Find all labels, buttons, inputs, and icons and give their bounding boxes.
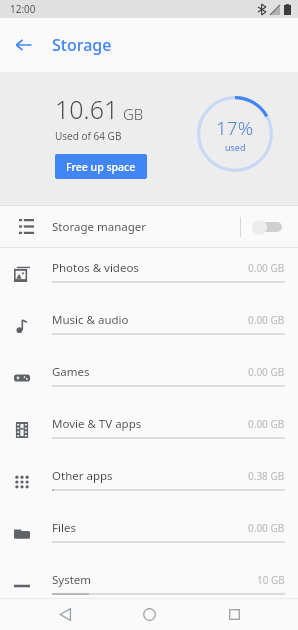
button[interactable]: Recent apps <box>214 598 254 630</box>
staticText: used <box>225 141 246 153</box>
staticText: Music & audio <box>52 312 129 328</box>
button[interactable]: System <box>0 560 298 612</box>
staticText: Games <box>52 364 90 380</box>
staticText: 0.00 GB <box>248 261 285 275</box>
staticText: Used of 64 GB <box>55 129 122 143</box>
button[interactable]: Other apps <box>0 456 298 508</box>
button[interactable]: Files <box>0 508 298 560</box>
button[interactable]: Free up space <box>55 154 147 179</box>
staticText: 0.38 GB <box>248 469 285 483</box>
staticText: 10 GB <box>257 573 285 587</box>
button[interactable]: Games <box>0 352 298 404</box>
staticText: Movie & TV apps <box>52 416 142 432</box>
staticText: 10.61 <box>55 92 119 126</box>
button[interactable]: Home <box>129 598 169 630</box>
button[interactable]: Storage manager toggle <box>252 215 282 239</box>
staticText: 0.00 GB <box>248 313 285 327</box>
staticText: Other apps <box>52 468 113 484</box>
button[interactable]: Music & audio <box>0 300 298 352</box>
staticText: 12:00 <box>10 2 36 16</box>
staticText: Files <box>52 520 76 536</box>
staticText: Storage <box>52 34 112 56</box>
button[interactable]: Back <box>6 27 42 63</box>
button[interactable]: Back <box>45 598 85 630</box>
button[interactable]: Storage manager <box>0 206 298 247</box>
staticText: 0.00 GB <box>248 365 285 379</box>
staticText: Free up space <box>66 160 136 174</box>
staticText: Photos & videos <box>52 260 139 276</box>
staticText: System <box>52 572 92 588</box>
staticText: 0.00 GB <box>248 417 285 431</box>
staticText: 0.00 GB <box>248 521 285 535</box>
button[interactable]: Movie & TV apps <box>0 404 298 456</box>
button[interactable]: Photos & videos <box>0 248 298 300</box>
staticText: GB <box>123 104 144 124</box>
staticText: Storage manager <box>52 219 240 235</box>
staticText: 17% <box>216 115 254 141</box>
